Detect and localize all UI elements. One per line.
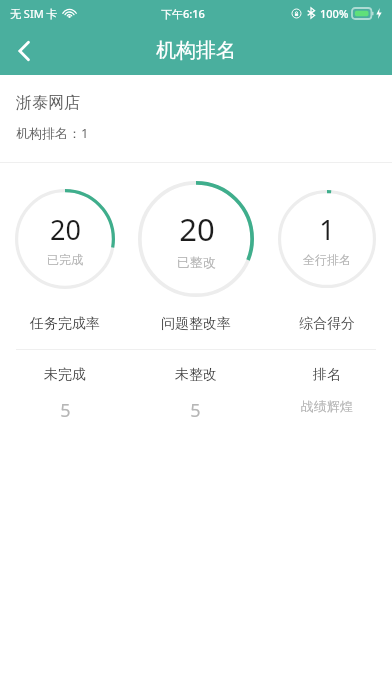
staticText: 20 [50,211,81,248]
staticText: 综合得分 [299,315,355,333]
staticText: 机构排名 [156,38,236,63]
button[interactable]: 20 [15,189,115,289]
staticText: 20 [179,208,215,250]
staticText: 排名 [313,366,341,384]
staticText: 任务完成率 [30,315,100,333]
button[interactable]: 未完成 [0,366,130,423]
button[interactable]: 20 [138,181,254,297]
staticText: 已整改 [177,254,216,270]
staticText: 未整改 [175,366,217,384]
staticText: 全行排名 [303,252,351,267]
button[interactable]: 未整改 [130,366,261,423]
staticText: 无 SIM 卡 [10,6,58,21]
staticText: 下午6:16 [161,6,205,21]
staticText: 战绩辉煌 [301,398,353,414]
staticText: 5 [190,398,201,423]
staticText: 机构排名：1 [16,124,89,142]
staticText: 问题整改率 [161,315,231,333]
staticText: 5 [60,398,71,423]
button[interactable]: 1 [278,190,376,288]
button[interactable]: Back [0,27,48,75]
staticText: 已完成 [47,252,83,267]
staticText: 未完成 [44,366,86,384]
staticText: 100% [320,6,349,21]
button[interactable]: 排名 [261,366,392,414]
staticText: 1 [319,211,335,248]
staticText: 浙泰网店 [16,93,80,113]
